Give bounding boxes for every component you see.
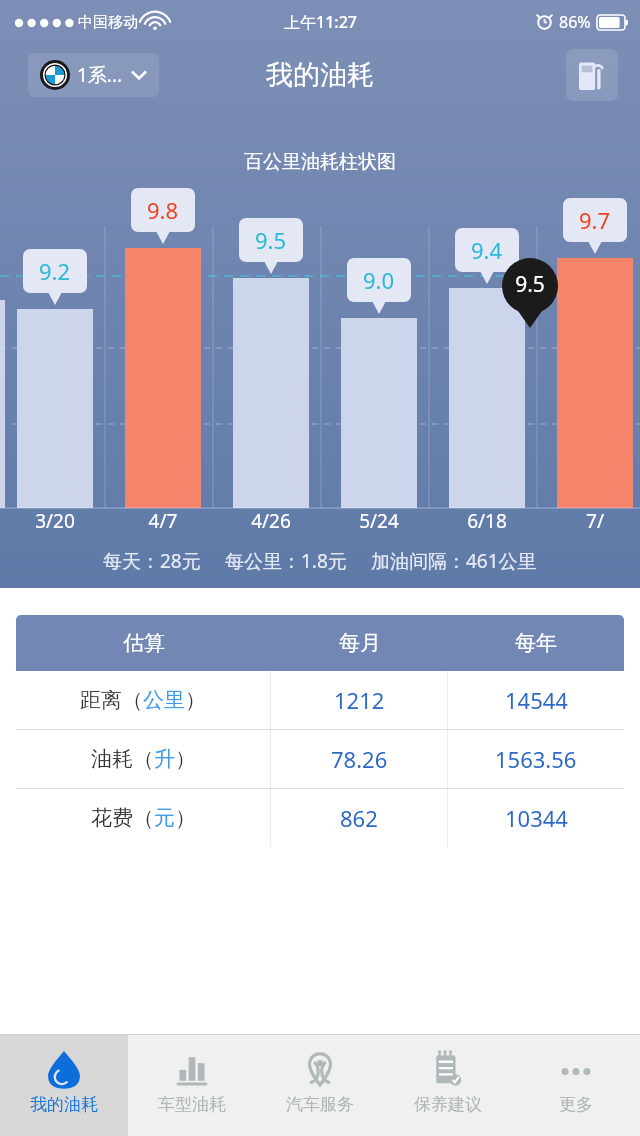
button[interactable]: 油耗 (16, 730, 624, 788)
staticText: 每天：28元 (103, 548, 201, 574)
button[interactable]: 汽车服务 (256, 1035, 384, 1136)
button[interactable]: 我的油耗 (0, 1035, 128, 1136)
staticText: 5/24 (347, 508, 411, 534)
staticText: （ (122, 687, 143, 713)
staticText: 4/7 (131, 508, 195, 534)
staticText: 10344 (505, 803, 568, 833)
staticText: 每月 (339, 630, 381, 656)
button[interactable]: 车型油耗 (128, 1035, 256, 1136)
staticText: 保养建议 (414, 1094, 482, 1115)
staticText: 中国移动 (78, 13, 138, 32)
button[interactable]: 加油记录 (566, 49, 618, 101)
staticText: 加油间隔：461公里 (371, 548, 537, 574)
staticText: 公里 (143, 687, 185, 713)
staticText: 86% (559, 11, 591, 33)
staticText: ） (175, 746, 196, 772)
staticText: 1系... (77, 62, 123, 88)
staticText: 1212 (334, 685, 385, 715)
staticText: 汽车服务 (286, 1094, 354, 1115)
staticText: 距离 (80, 687, 122, 713)
staticText: 9.2 (39, 256, 71, 286)
button[interactable]: 距离 (16, 671, 624, 729)
staticText: 我的油耗 (30, 1094, 98, 1115)
staticText: 862 (340, 803, 378, 833)
staticText: （ (133, 805, 154, 831)
staticText: 4/26 (239, 508, 303, 534)
staticText: 油耗 (91, 746, 133, 772)
staticText: 9.5 (255, 225, 287, 255)
staticText: 我的油耗 (266, 58, 374, 92)
staticText: 百公里油耗柱状图 (0, 150, 640, 174)
button[interactable]: 花费 (16, 789, 624, 847)
staticText: 9.4 (471, 235, 503, 265)
staticText: 9.0 (363, 265, 395, 295)
staticText: 每年 (515, 630, 557, 656)
staticText: 上午11:27 (284, 11, 357, 33)
button[interactable]: 保养建议 (384, 1035, 512, 1136)
staticText: 升 (154, 746, 175, 772)
button[interactable]: 1系... (28, 53, 159, 97)
staticText: 9.5 (502, 270, 558, 299)
staticText: 1563.56 (495, 744, 577, 774)
staticText: 3/20 (23, 508, 87, 534)
staticText: 6/18 (455, 508, 519, 534)
staticText: （ (133, 746, 154, 772)
staticText: 9.8 (147, 195, 179, 225)
staticText: 每公里：1.8元 (225, 548, 347, 574)
staticText: 9.7 (579, 205, 611, 235)
staticText: 花费 (91, 805, 133, 831)
staticText: 车型油耗 (158, 1094, 226, 1115)
staticText: 更多 (559, 1094, 593, 1115)
staticText: ） (175, 805, 196, 831)
staticText: 7/ (563, 508, 627, 534)
staticText: 元 (154, 805, 175, 831)
staticText: ） (185, 687, 206, 713)
button[interactable]: 更多 (512, 1035, 640, 1136)
staticText: 14544 (505, 685, 568, 715)
staticText: 78.26 (331, 744, 388, 774)
staticText: 估算 (123, 630, 165, 656)
